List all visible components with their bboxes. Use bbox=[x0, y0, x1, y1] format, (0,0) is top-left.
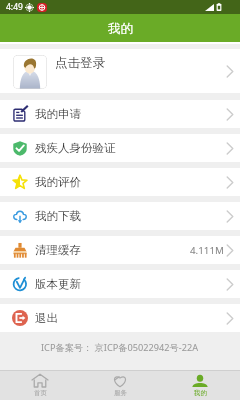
staticText: ICP备案号： 京ICP备05022942号-22A bbox=[41, 341, 199, 354]
button[interactable]: 我的下载 bbox=[0, 202, 240, 230]
staticText: 点击登录 bbox=[55, 55, 105, 71]
staticText: 残疾人身份验证 bbox=[35, 141, 116, 155]
button[interactable]: 首页 bbox=[0, 371, 80, 400]
staticText: 清理缓存 bbox=[35, 243, 81, 257]
staticText: 我的申请 bbox=[35, 107, 81, 121]
button[interactable]: 服务 bbox=[80, 371, 160, 400]
staticText: 4.111M bbox=[190, 244, 224, 257]
button[interactable]: 我的评价 bbox=[0, 168, 240, 196]
staticText: 我的下载 bbox=[35, 209, 81, 223]
staticText: 首页 bbox=[34, 389, 47, 397]
staticText: 服务 bbox=[114, 389, 127, 397]
staticText: 我的评价 bbox=[35, 175, 81, 189]
staticText: 版本更新 bbox=[35, 277, 81, 291]
staticText: 4:49 bbox=[6, 1, 23, 13]
button[interactable]: 残疾人身份验证 bbox=[0, 134, 240, 162]
button[interactable]: 版本更新 bbox=[0, 270, 240, 298]
button[interactable]: 我的申请 bbox=[0, 100, 240, 128]
staticText: 退出 bbox=[35, 311, 58, 325]
staticText: 我的 bbox=[194, 389, 207, 397]
button[interactable]: 点击登录 bbox=[0, 49, 240, 93]
staticText: 我的 bbox=[108, 21, 133, 37]
button[interactable]: 退出 bbox=[0, 304, 240, 332]
button[interactable]: 我的 bbox=[160, 371, 240, 400]
button[interactable]: 清理缓存 bbox=[0, 236, 240, 264]
